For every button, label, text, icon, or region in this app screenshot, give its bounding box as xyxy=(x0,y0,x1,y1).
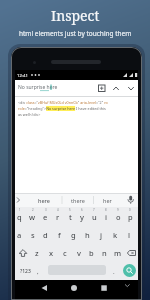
staticText: 12:41 xyxy=(17,72,28,78)
staticText: 3 xyxy=(45,208,47,212)
staticText: n xyxy=(102,248,107,258)
staticText: z xyxy=(35,248,39,258)
staticText: v xyxy=(77,248,81,258)
button[interactable] xyxy=(15,245,30,261)
button[interactable]: k xyxy=(108,227,122,243)
button[interactable]: l xyxy=(122,227,136,243)
button[interactable] xyxy=(66,282,82,298)
button[interactable]: a xyxy=(13,227,26,243)
staticText: l xyxy=(128,230,131,240)
button[interactable] xyxy=(96,83,107,94)
button[interactable]: g xyxy=(66,227,80,243)
button[interactable]: x xyxy=(44,245,58,261)
staticText: , xyxy=(37,268,39,276)
staticText: e xyxy=(43,212,48,222)
button[interactable]: v xyxy=(72,245,85,261)
staticText: as well</div> xyxy=(18,112,41,117)
staticText: 4 xyxy=(57,208,59,212)
button[interactable]: b xyxy=(85,245,98,261)
button[interactable]: s xyxy=(26,227,39,243)
staticText: . xyxy=(113,268,115,276)
staticText: html elements just by touching them xyxy=(19,29,132,38)
staticText: u xyxy=(92,212,97,222)
staticText: <div class="zBHuf MUx0Ld v0nnCb" aria-le… xyxy=(18,100,108,105)
staticText: p xyxy=(128,212,133,222)
staticText: b xyxy=(89,248,94,258)
button[interactable]: y xyxy=(76,209,88,225)
button[interactable]: d xyxy=(39,227,52,243)
staticText: 6 xyxy=(81,208,83,212)
button[interactable]: No surprise here xyxy=(15,80,138,97)
button[interactable] xyxy=(110,83,121,94)
staticText: here xyxy=(38,197,50,204)
button[interactable]: z xyxy=(30,245,44,261)
staticText: her xyxy=(103,197,112,204)
staticText: there xyxy=(71,197,85,204)
button[interactable] xyxy=(125,83,136,94)
button[interactable]: n xyxy=(98,245,111,261)
staticText: a xyxy=(17,230,22,240)
button[interactable]: u xyxy=(88,209,100,225)
staticText: x xyxy=(49,248,54,258)
staticText: r xyxy=(56,212,60,222)
button[interactable]: f xyxy=(52,227,66,243)
button[interactable]: c xyxy=(58,245,72,261)
button[interactable]: ?123 xyxy=(15,263,35,280)
button[interactable]: p xyxy=(124,209,136,225)
staticText: 2 xyxy=(32,208,34,212)
button[interactable]: t xyxy=(64,209,76,225)
staticText: 1 xyxy=(19,208,21,212)
staticText: m xyxy=(114,248,122,258)
staticText: c xyxy=(63,248,67,258)
staticText: q xyxy=(17,212,22,222)
staticText: 7 xyxy=(93,208,95,212)
staticText: j xyxy=(100,230,103,240)
staticText: y xyxy=(80,212,84,222)
button[interactable] xyxy=(96,282,112,298)
button[interactable]: r xyxy=(52,209,64,225)
button[interactable]: e xyxy=(39,209,52,225)
staticText: f xyxy=(58,230,61,240)
button[interactable]: there xyxy=(62,193,93,207)
staticText: 9 xyxy=(117,208,119,212)
staticText: No surprise here xyxy=(18,84,58,91)
button[interactable] xyxy=(123,264,136,277)
staticText: Inspect xyxy=(51,6,100,25)
button[interactable]: j xyxy=(94,227,108,243)
button[interactable]: her xyxy=(94,193,120,207)
staticText: s xyxy=(31,230,35,240)
button[interactable] xyxy=(124,245,138,261)
staticText: i xyxy=(105,212,108,222)
button[interactable]: w xyxy=(26,209,39,225)
button[interactable]: i xyxy=(100,209,112,225)
staticText: ?123 xyxy=(20,268,31,275)
staticText: 5 xyxy=(69,208,71,212)
staticText: 8 xyxy=(105,208,107,212)
button[interactable]: m xyxy=(111,245,124,261)
button[interactable]: . xyxy=(107,263,121,280)
staticText: h xyxy=(85,230,90,240)
button[interactable]: o xyxy=(112,209,124,225)
staticText: 0 xyxy=(129,208,131,212)
staticText: g xyxy=(71,230,76,240)
staticText: w xyxy=(29,212,36,222)
staticText: role="heading">No surprise here I have e… xyxy=(18,106,106,111)
button[interactable]: , xyxy=(31,263,45,280)
button[interactable] xyxy=(36,282,52,298)
staticText: o xyxy=(116,212,121,222)
button[interactable]: q xyxy=(13,209,26,225)
staticText: k xyxy=(113,230,118,240)
button[interactable]: h xyxy=(80,227,94,243)
button[interactable]: here xyxy=(25,193,62,207)
staticText: t xyxy=(69,212,72,222)
staticText: d xyxy=(43,230,48,240)
